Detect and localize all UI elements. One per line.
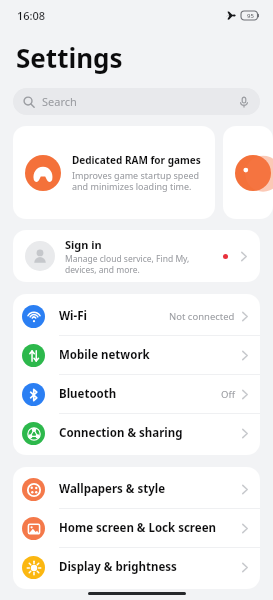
button[interactable]: Dedicated RAM for games [13,126,215,219]
button[interactable]: Wi-Fi [13,297,260,335]
staticText: 16:08 [17,8,46,23]
button[interactable]: Connection & sharing [13,414,260,452]
staticText: Connection & sharing [59,425,183,441]
staticText: Wi-Fi [59,308,87,324]
staticText: Search [42,94,77,109]
button[interactable]: Bluetooth [13,375,260,413]
staticText: Bluetooth [59,386,117,402]
button[interactable]: Sign in [13,230,260,282]
staticText: Dedicated RAM for games [72,153,201,167]
staticText: Off [221,388,235,401]
staticText: 95 [247,12,254,20]
button[interactable]: Voice search [238,96,250,108]
button[interactable]: Mobile network [13,336,260,374]
button[interactable]: Display & brightness [13,548,260,586]
staticText: Manage cloud service, Find My, devices, … [65,253,223,275]
button[interactable]: Search [13,88,260,115]
staticText: Mobile network [59,347,150,363]
button[interactable]: Wallpapers & style [13,470,260,508]
staticText: Display & brightness [59,559,177,575]
staticText: Not connected [169,310,235,323]
staticText: Settings [16,40,123,75]
button[interactable] [223,126,273,219]
staticText: Improves game startup speed and minimize… [72,169,207,193]
staticText: Sign in [65,237,102,252]
staticText: Wallpapers & style [59,481,166,497]
staticText: Home screen & Lock screen [59,520,216,536]
button[interactable]: Home screen & Lock screen [13,509,260,547]
